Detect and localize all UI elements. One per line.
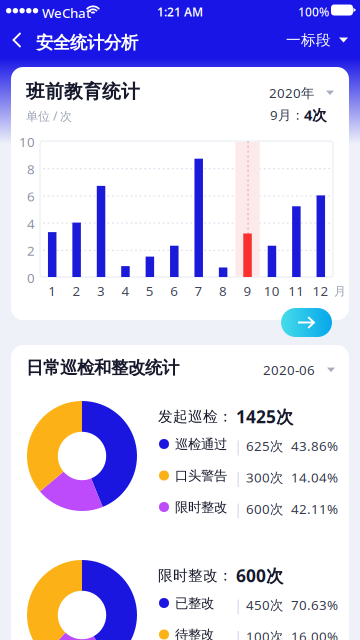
staticText: 7 [195,282,203,300]
staticText: 待整改 [175,626,214,640]
staticText: 100次 [246,627,283,640]
button[interactable]: Next [281,308,332,337]
staticText: 月 [334,284,346,299]
staticText: 5 [146,282,154,300]
staticText: 9 [243,282,251,300]
staticText: 6 [27,187,35,205]
staticText: 600次 [236,564,283,587]
staticText: | [234,499,242,518]
staticText: 已整改 [175,595,214,611]
staticText: | [234,626,242,640]
staticText: 限时整改： [158,566,233,584]
staticText: 70.63% [291,596,338,614]
staticText: 600次 [246,500,283,518]
staticText: 巡检通过 [175,436,227,452]
staticText: 4 [121,282,129,300]
staticText: 42.11% [291,500,338,518]
staticText: 10 [264,282,280,300]
staticText: 43.86% [291,437,338,455]
button[interactable]: Back [0,22,32,58]
staticText: | [234,467,242,487]
staticText: 16.00% [291,627,338,640]
staticText: 450次 [246,596,283,614]
staticText: 安全统计分析 [36,32,138,53]
staticText: 4次 [304,105,327,124]
staticText: 日常巡检和整改统计 [26,357,179,378]
staticText: 300次 [246,468,283,486]
staticText: WeChat [42,4,91,22]
staticText: 12 [313,282,329,300]
staticText: 100% [298,4,329,20]
staticText: 2 [73,282,81,300]
staticText: 14.04% [291,468,338,486]
button[interactable]: 2020年 [263,79,340,107]
staticText: 8 [27,160,35,178]
staticText: 6 [170,282,178,300]
staticText: 班前教育统计 [26,80,140,103]
staticText: 4 [27,215,35,232]
staticText: 10 [19,133,35,151]
staticText: 1 [48,282,56,300]
staticText: 0 [27,269,35,287]
staticText: | [234,436,242,455]
staticText: 9月： [270,106,304,124]
staticText: 8 [219,282,227,300]
staticText: 2020年 [269,84,314,102]
staticText: 1425次 [236,405,293,428]
staticText: 11 [288,282,304,300]
staticText: 一标段 [286,31,331,49]
staticText: 1:21 AM [157,4,203,20]
staticText: 625次 [246,437,283,455]
staticText: 发起巡检： [158,407,233,425]
staticText: 单位 / 次 [26,108,72,124]
button[interactable]: 2020-06 [257,356,341,384]
button[interactable]: 一标段 [276,22,360,58]
staticText: 2 [27,242,35,259]
staticText: 2020-06 [263,361,315,379]
staticText: 限时整改 [175,499,227,515]
staticText: | [234,595,242,614]
staticText: 口头警告 [175,467,227,484]
staticText: 3 [97,282,105,300]
